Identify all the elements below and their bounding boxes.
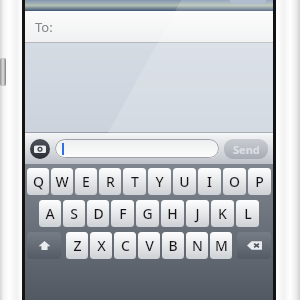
- staticText: I: [207, 172, 212, 191]
- staticText: K: [218, 204, 227, 223]
- button[interactable]: Volume: [0, 58, 6, 86]
- button[interactable]: K: [211, 200, 234, 227]
- staticText: U: [179, 172, 190, 191]
- button[interactable]: G: [136, 200, 159, 227]
- button[interactable]: T: [123, 168, 146, 195]
- staticText: Q: [33, 172, 44, 191]
- staticText: T: [131, 172, 139, 191]
- button[interactable]: Q: [27, 168, 49, 195]
- button[interactable]: S: [63, 200, 85, 227]
- staticText: Send: [233, 142, 260, 157]
- button[interactable]: X: [90, 232, 112, 259]
- button[interactable]: R: [99, 168, 121, 195]
- button[interactable]: J: [186, 200, 209, 227]
- staticText: X: [97, 236, 106, 255]
- staticText: E: [82, 172, 90, 191]
- button[interactable]: Backspace: [237, 232, 271, 259]
- staticText: O: [229, 172, 240, 191]
- staticText: C: [121, 236, 130, 255]
- button[interactable]: N: [186, 232, 208, 259]
- staticText: P: [255, 172, 264, 191]
- button[interactable]: F: [111, 200, 134, 227]
- staticText: L: [244, 204, 252, 223]
- staticText: R: [106, 172, 115, 191]
- button[interactable]: Y: [148, 168, 171, 195]
- staticText: D: [93, 204, 104, 223]
- button[interactable]: M: [210, 232, 232, 259]
- staticText: F: [119, 204, 127, 223]
- staticText: A: [45, 204, 55, 223]
- button[interactable]: B: [162, 232, 184, 259]
- button[interactable]: [25, 43, 273, 132]
- button[interactable]: L: [236, 200, 259, 227]
- button[interactable]: O: [223, 168, 246, 195]
- button[interactable]: [55, 139, 219, 158]
- button[interactable]: P: [248, 168, 271, 195]
- staticText: W: [55, 172, 69, 191]
- button[interactable]: Z: [66, 232, 88, 259]
- button[interactable]: Send: [224, 139, 268, 159]
- button[interactable]: Shift: [27, 232, 61, 259]
- button[interactable]: A: [39, 200, 61, 227]
- button[interactable]: D: [87, 200, 109, 227]
- staticText: N: [192, 236, 203, 255]
- staticText: Y: [155, 172, 164, 191]
- staticText: M: [215, 236, 228, 255]
- button[interactable]: W: [51, 168, 73, 195]
- staticText: G: [142, 204, 153, 223]
- staticText: V: [145, 236, 154, 255]
- button[interactable]: To:: [25, 11, 273, 42]
- button[interactable]: E: [75, 168, 97, 195]
- staticText: To:: [35, 18, 53, 36]
- staticText: Z: [73, 236, 82, 255]
- button[interactable]: Attach photo: [30, 139, 50, 159]
- staticText: H: [167, 204, 178, 223]
- staticText: S: [70, 204, 78, 223]
- button[interactable]: U: [173, 168, 196, 195]
- button[interactable]: V: [138, 232, 160, 259]
- staticText: B: [168, 236, 178, 255]
- button[interactable]: C: [114, 232, 136, 259]
- button[interactable]: H: [161, 200, 184, 227]
- button[interactable]: I: [198, 168, 221, 195]
- staticText: J: [195, 204, 200, 223]
